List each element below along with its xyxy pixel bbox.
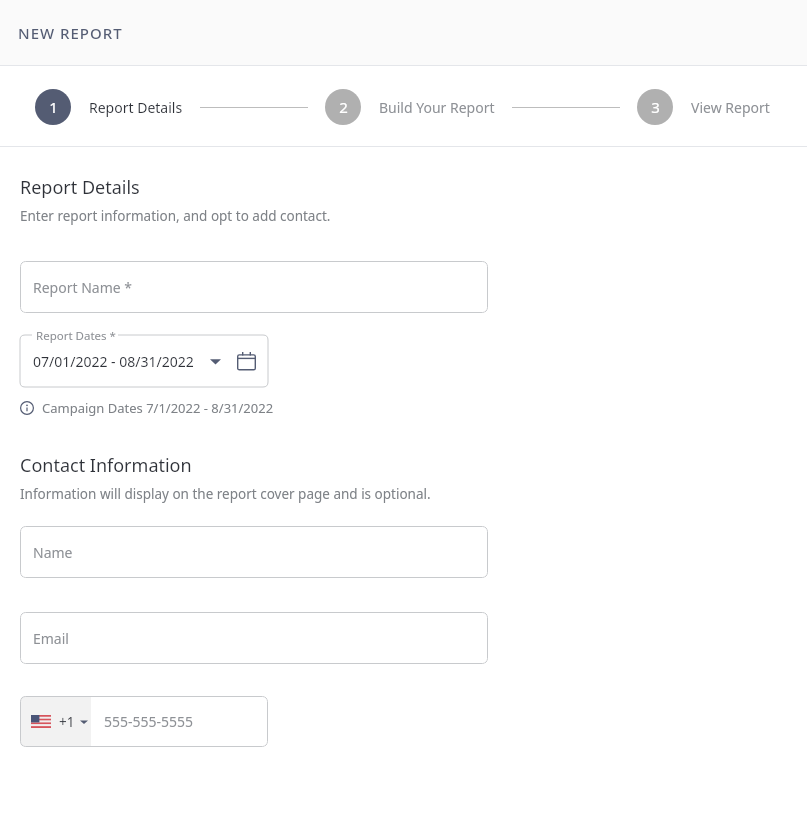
staticText: NEW REPORT [18,23,123,43]
staticText: Campaign Dates 7/1/2022 - 8/31/2022 [42,399,274,417]
button[interactable]: Open date range options [206,352,224,370]
staticText: 555-555-5555 [104,712,194,731]
button[interactable]: 3 [637,89,770,125]
staticText: View Report [691,98,770,117]
staticText: 07/01/2022 - 08/31/2022 [33,352,194,371]
button[interactable]: 555-555-5555 [91,696,268,747]
button[interactable]: +1 [20,696,91,747]
button[interactable]: Name [20,526,488,578]
staticText: 3 [651,97,660,117]
button[interactable]: Email [20,612,488,664]
staticText: Email [33,629,69,648]
button[interactable]: Report Name * [20,261,488,313]
staticText: Report Details [20,175,140,200]
staticText: 2 [339,97,348,117]
staticText: Report Dates * [36,328,116,344]
staticText: Build Your Report [379,98,495,117]
staticText: Enter report information, and opt to add… [20,207,331,225]
button[interactable]: Report Dates * [20,335,268,387]
staticText: 1 [49,97,58,117]
button[interactable]: Open calendar picker [235,350,257,372]
staticText: Contact Information [20,453,192,478]
button[interactable]: 2 [325,89,495,125]
button[interactable]: NEW REPORT [18,23,123,43]
staticText: Report Details [89,98,183,117]
staticText: Report Name * [33,278,132,297]
staticText: +1 [59,713,75,731]
button[interactable]: 1 [35,89,183,125]
staticText: Information will display on the report c… [20,485,431,503]
staticText: Name [33,543,73,562]
